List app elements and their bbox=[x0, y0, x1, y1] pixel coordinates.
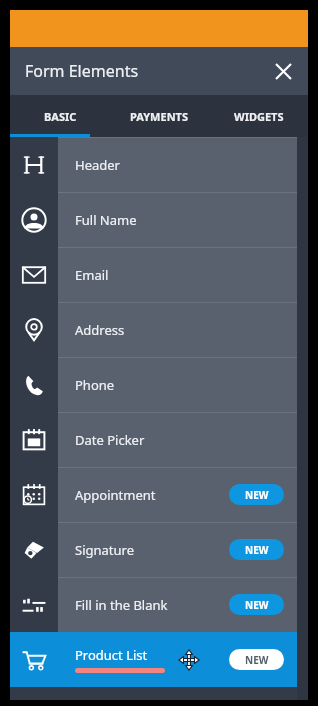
button[interactable]: Appointment bbox=[10, 467, 308, 522]
staticText: Address bbox=[75, 321, 125, 339]
button[interactable]: WIDGETS bbox=[209, 95, 308, 137]
button[interactable]: Full Name bbox=[10, 192, 308, 247]
button[interactable]: NEW bbox=[229, 594, 284, 615]
staticText: Product List bbox=[75, 646, 148, 664]
button[interactable]: NEW bbox=[229, 484, 284, 505]
button[interactable]: Close bbox=[266, 54, 300, 88]
button[interactable]: Phone bbox=[10, 357, 308, 412]
staticText: Phone bbox=[75, 376, 115, 394]
staticText: Form Elements bbox=[25, 60, 139, 82]
staticText: PAYMENTS bbox=[130, 109, 189, 124]
button[interactable]: PAYMENTS bbox=[110, 95, 209, 137]
staticText: Fill in the Blank bbox=[75, 596, 168, 614]
button[interactable]: BASIC bbox=[10, 95, 110, 137]
staticText: Full Name bbox=[75, 211, 137, 229]
staticText: NEW bbox=[245, 488, 269, 502]
staticText: Email bbox=[75, 266, 109, 284]
button[interactable]: Fill in the Blank bbox=[10, 577, 308, 632]
staticText: BASIC bbox=[44, 109, 77, 124]
button[interactable]: Header bbox=[10, 137, 308, 192]
button[interactable]: Date Picker bbox=[10, 412, 308, 467]
button[interactable]: Email bbox=[10, 247, 308, 302]
staticText: NEW bbox=[245, 653, 269, 667]
staticText: Date Picker bbox=[75, 431, 145, 449]
staticText: Signature bbox=[75, 541, 134, 559]
button[interactable]: NEW bbox=[229, 539, 284, 560]
button[interactable]: Signature bbox=[10, 522, 308, 577]
staticText: Header bbox=[75, 156, 120, 174]
staticText: NEW bbox=[245, 598, 269, 612]
staticText: Appointment bbox=[75, 486, 156, 504]
button[interactable]: Product List bbox=[10, 632, 308, 687]
button[interactable]: Address bbox=[10, 302, 308, 357]
other: Move bbox=[178, 649, 200, 671]
button[interactable]: NEW bbox=[229, 649, 284, 670]
staticText: WIDGETS bbox=[234, 109, 284, 124]
staticText: NEW bbox=[245, 543, 269, 557]
